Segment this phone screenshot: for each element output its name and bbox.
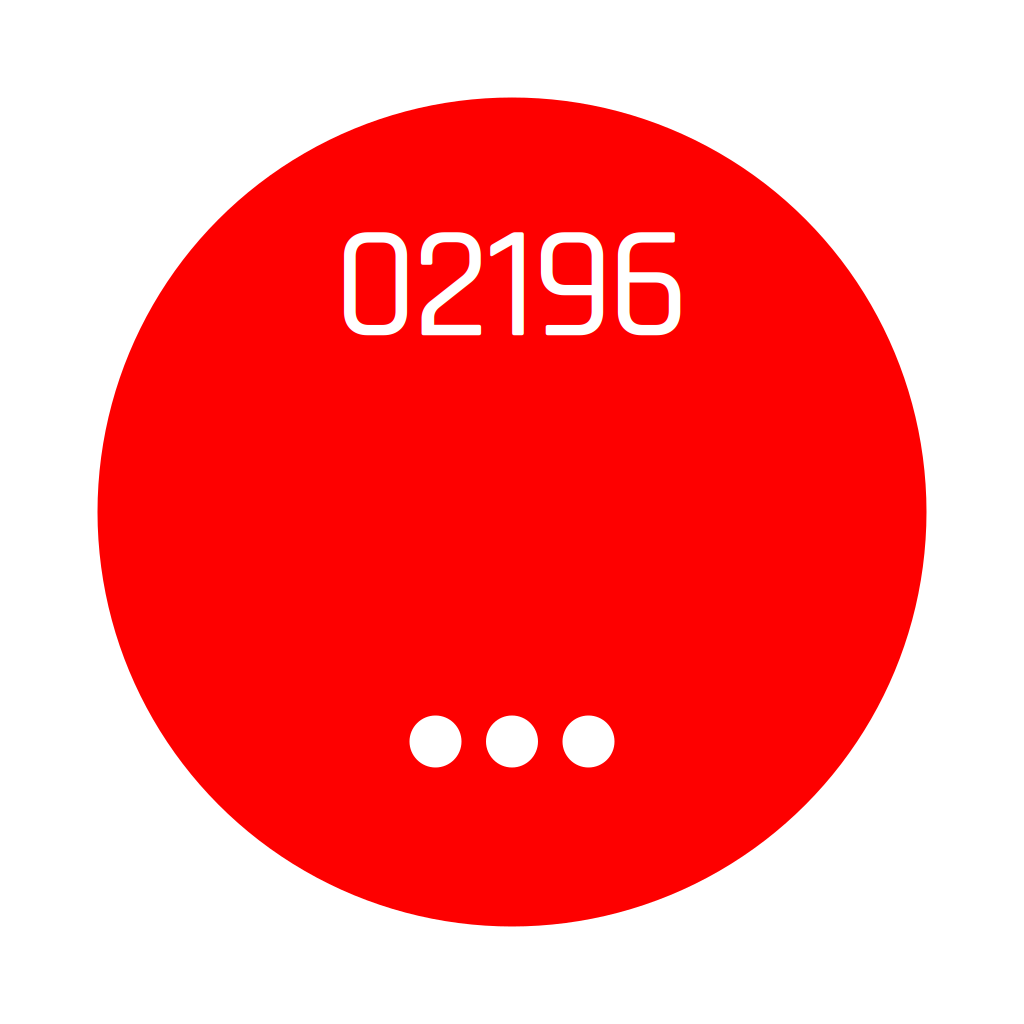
staticText: 02196 <box>334 186 690 391</box>
button[interactable]: Ticket 02196 <box>97 97 926 926</box>
